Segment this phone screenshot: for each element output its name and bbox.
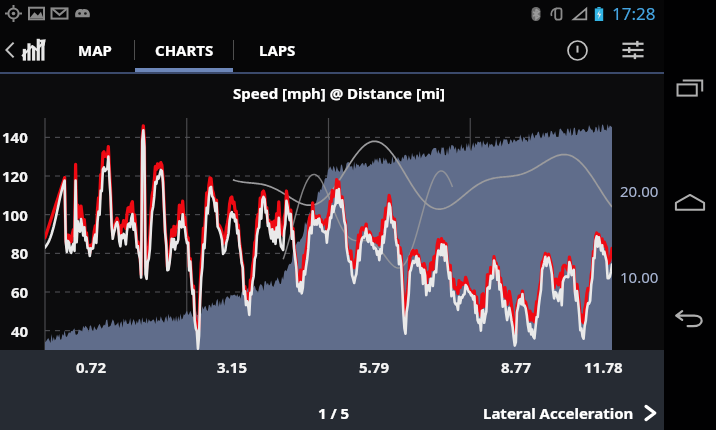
button[interactable]: Lateral Acceleration: [473, 395, 664, 430]
staticText: 11.78: [584, 357, 623, 377]
staticText: MAP: [78, 40, 112, 60]
button[interactable]: Home: [664, 176, 716, 228]
staticText: Lateral Acceleration: [483, 403, 634, 423]
staticText: 8.77: [501, 357, 531, 377]
staticText: 17:28: [612, 2, 656, 25]
staticText: 100: [2, 205, 28, 225]
button[interactable]: Info: [554, 26, 600, 74]
button[interactable]: Settings: [610, 26, 656, 74]
button[interactable]: CHARTS: [135, 26, 233, 74]
staticText: Speed [mph] @ Distance [mi]: [233, 83, 445, 103]
staticText: 3.15: [217, 357, 247, 377]
button[interactable]: Navigate up: [0, 26, 53, 74]
staticText: 40: [11, 321, 29, 341]
button[interactable]: Recent apps: [664, 62, 716, 114]
staticText: 60: [11, 282, 29, 302]
staticText: LAPS: [259, 40, 296, 60]
staticText: 10.00: [620, 267, 659, 287]
staticText: 5.79: [359, 357, 389, 377]
staticText: 20.00: [620, 181, 659, 201]
button[interactable]: MAP: [56, 26, 134, 74]
staticText: 140: [2, 127, 28, 147]
staticText: 0.72: [76, 357, 106, 377]
staticText: 1 / 5: [318, 403, 350, 423]
button[interactable]: LAPS: [234, 26, 320, 74]
button[interactable]: Back: [664, 290, 716, 342]
staticText: CHARTS: [155, 40, 214, 60]
staticText: 120: [2, 166, 28, 186]
staticText: 80: [11, 243, 29, 263]
